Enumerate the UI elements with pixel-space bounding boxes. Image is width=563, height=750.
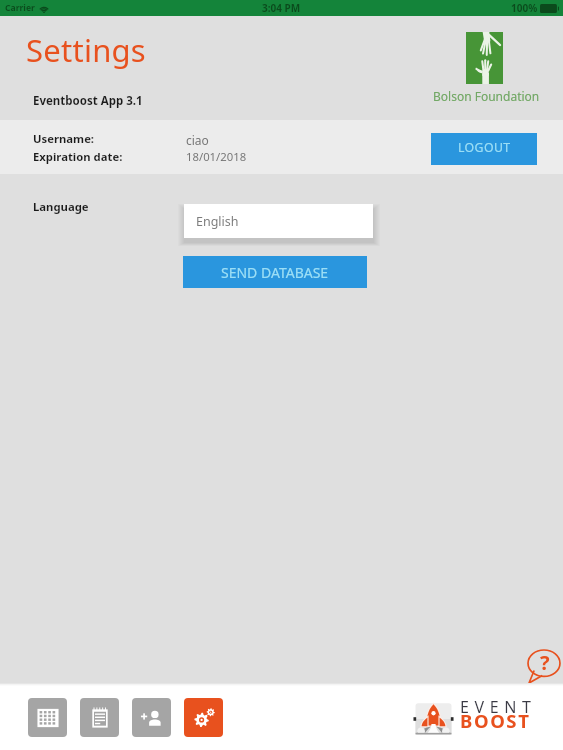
- staticText: LOGOUT: [458, 139, 511, 156]
- button[interactable]: SEND DATABASE: [183, 256, 367, 288]
- staticText: ciao: [186, 132, 209, 148]
- button[interactable]: Event Boost: [411, 695, 537, 742]
- button[interactable]: LOGOUT: [431, 133, 537, 165]
- button[interactable]: Help: [527, 650, 561, 683]
- staticText: 3:04 PM: [262, 1, 301, 15]
- staticText: 100%: [511, 1, 538, 15]
- staticText: BOOST: [460, 708, 531, 733]
- button[interactable]: Settings: [184, 698, 223, 737]
- button[interactable]: Calendar: [28, 698, 67, 737]
- button[interactable]: Notes: [80, 698, 119, 737]
- staticText: Carrier: [5, 2, 35, 14]
- staticText: ?: [540, 649, 550, 676]
- staticText: Language: [33, 199, 89, 214]
- staticText: Username:: [33, 131, 95, 146]
- staticText: SEND DATABASE: [221, 263, 329, 282]
- staticText: Expiration date:: [33, 149, 123, 164]
- button[interactable]: Add person: [132, 698, 171, 737]
- button[interactable]: English: [184, 204, 373, 238]
- staticText: English: [196, 213, 239, 230]
- staticText: Settings: [26, 29, 146, 71]
- staticText: 18/01/2018: [186, 149, 247, 164]
- staticText: Eventboost App 3.1: [33, 93, 143, 109]
- staticText: Bolson Foundation: [433, 88, 540, 104]
- staticText: EVENT: [460, 696, 537, 718]
